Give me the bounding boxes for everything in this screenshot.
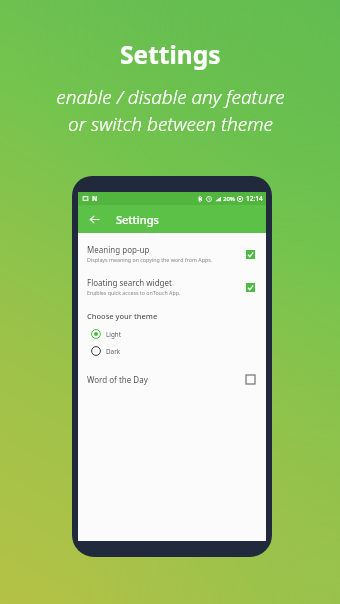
- staticText: Displays meaning on copying the word fro…: [87, 256, 213, 263]
- button[interactable]: Floating search widget: [78, 275, 266, 298]
- button[interactable]: Dark: [78, 345, 266, 357]
- button[interactable]: Word of the Day: [78, 370, 266, 388]
- staticText: Light: [106, 330, 121, 339]
- button[interactable]: Light: [78, 328, 266, 340]
- staticText: Dark: [106, 347, 121, 356]
- button[interactable]: Back: [84, 209, 104, 229]
- staticText: Word of the Day: [87, 374, 148, 385]
- button[interactable]: Enabled: [243, 280, 257, 294]
- staticText: Settings: [116, 212, 159, 227]
- staticText: 12:14: [246, 194, 263, 203]
- staticText: Settings: [120, 38, 221, 71]
- button[interactable]: Disabled: [243, 372, 257, 386]
- staticText: Meaning pop-up: [87, 244, 150, 255]
- staticText: 20%: [223, 195, 235, 203]
- staticText: Enables quick access to onTouch App.: [87, 289, 181, 296]
- staticText: Floating search widget: [87, 277, 172, 288]
- staticText: or switch between theme: [68, 111, 273, 137]
- staticText: Choose your theme: [87, 311, 158, 321]
- button[interactable]: Enabled: [243, 247, 257, 261]
- staticText: N: [92, 194, 98, 203]
- button[interactable]: Meaning pop-up: [78, 242, 266, 265]
- staticText: enable / disable any feature: [56, 84, 285, 110]
